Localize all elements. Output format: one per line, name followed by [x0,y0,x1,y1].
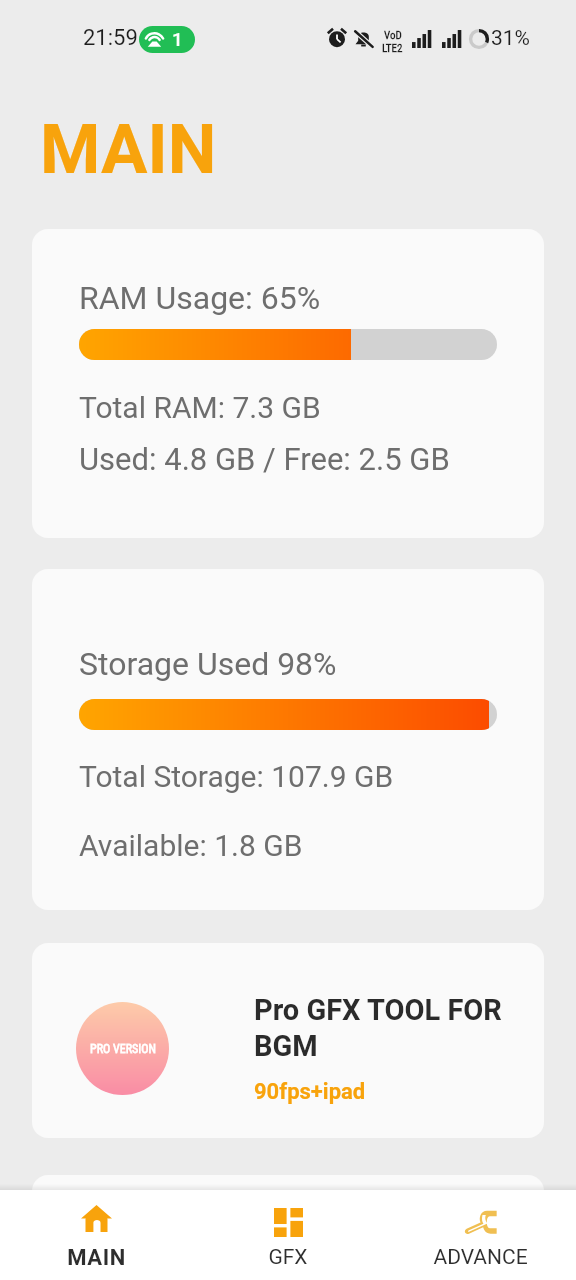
staticText: Total Storage: 107.9 GB [79,759,394,794]
staticText: MAIN [40,109,217,190]
other: Advance [464,1209,497,1235]
staticText: GFX [268,1245,308,1270]
staticText: PRO VERSION [90,1042,156,1056]
staticText: LTE2 [382,42,403,55]
button[interactable]: GFX [192,1190,384,1280]
other: GFX [274,1208,303,1237]
staticText: Available: 1.8 GB [79,828,303,863]
staticText: ADVANCE [433,1245,528,1270]
staticText: 21:59 [83,25,138,51]
staticText: 1 [172,28,183,50]
staticText: RAM Usage: 65% [79,279,321,317]
staticText: Total RAM: 7.3 GB [79,390,321,425]
staticText: VoD [384,29,402,42]
button[interactable]: Advance [384,1190,576,1280]
button[interactable]: PRO VERSION [32,943,544,1138]
staticText: 90fps+ipad [254,1079,366,1105]
other: Main [81,1205,112,1232]
staticText: Pro GFX TOOL FOR BGM [254,993,516,1063]
button[interactable]: Main [0,1190,192,1280]
staticText: 31% [491,26,530,51]
staticText: Used: 4.8 GB / Free: 2.5 GB [79,441,450,477]
staticText: Storage Used 98% [79,645,337,683]
staticText: MAIN [67,1245,126,1271]
